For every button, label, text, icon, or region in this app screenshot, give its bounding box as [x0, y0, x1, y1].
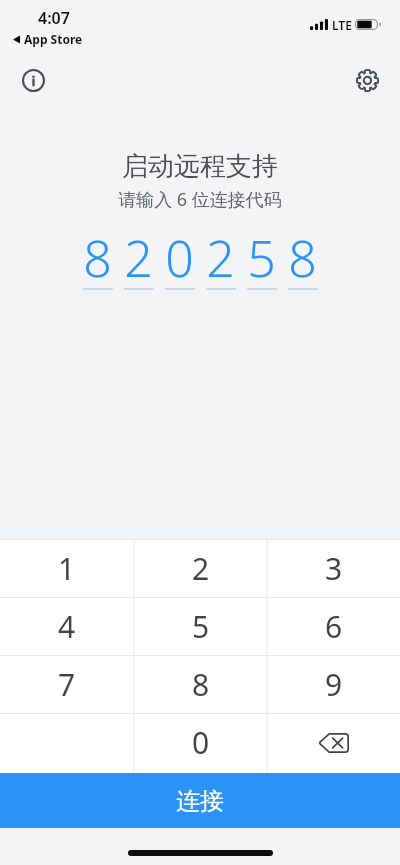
- button[interactable]: 7: [0, 656, 134, 713]
- staticText: 5: [247, 224, 276, 292]
- button[interactable]: 0: [134, 714, 267, 771]
- staticText: 4:07: [38, 7, 70, 29]
- staticText: 2: [206, 224, 235, 292]
- staticText: 0: [192, 722, 210, 763]
- button[interactable]: 连接: [0, 773, 400, 828]
- staticText: 4: [58, 606, 76, 647]
- staticText: 8: [288, 224, 317, 292]
- staticText: 7: [58, 664, 76, 705]
- staticText: 6: [325, 606, 343, 647]
- staticText: 2: [192, 548, 210, 589]
- button[interactable]: 6: [267, 598, 400, 655]
- staticText: 0: [165, 224, 194, 292]
- staticText: 8: [192, 664, 210, 705]
- staticText: 连接: [176, 786, 224, 816]
- staticText: LTE: [332, 17, 352, 33]
- button[interactable]: 8: [134, 656, 267, 713]
- staticText: App Store: [24, 31, 83, 47]
- button[interactable]: App Store: [13, 31, 83, 47]
- staticText: 2: [124, 224, 153, 292]
- button[interactable]: 5: [134, 598, 267, 655]
- button[interactable]: Delete: [267, 714, 400, 771]
- button[interactable]: Settings: [351, 64, 384, 97]
- button[interactable]: 4: [0, 598, 134, 655]
- staticText: 3: [325, 548, 343, 589]
- staticText: 9: [325, 664, 343, 705]
- button[interactable]: 2: [134, 540, 267, 597]
- button[interactable]: 9: [267, 656, 400, 713]
- button[interactable]: 3: [267, 540, 400, 597]
- staticText: 5: [192, 606, 210, 647]
- staticText: 1: [58, 548, 76, 589]
- button[interactable]: Information: [17, 64, 50, 97]
- staticText: 启动远程支持: [122, 150, 278, 183]
- staticText: 请输入 6 位连接代码: [118, 187, 282, 212]
- staticText: 8: [83, 224, 112, 292]
- button[interactable]: 1: [0, 540, 134, 597]
